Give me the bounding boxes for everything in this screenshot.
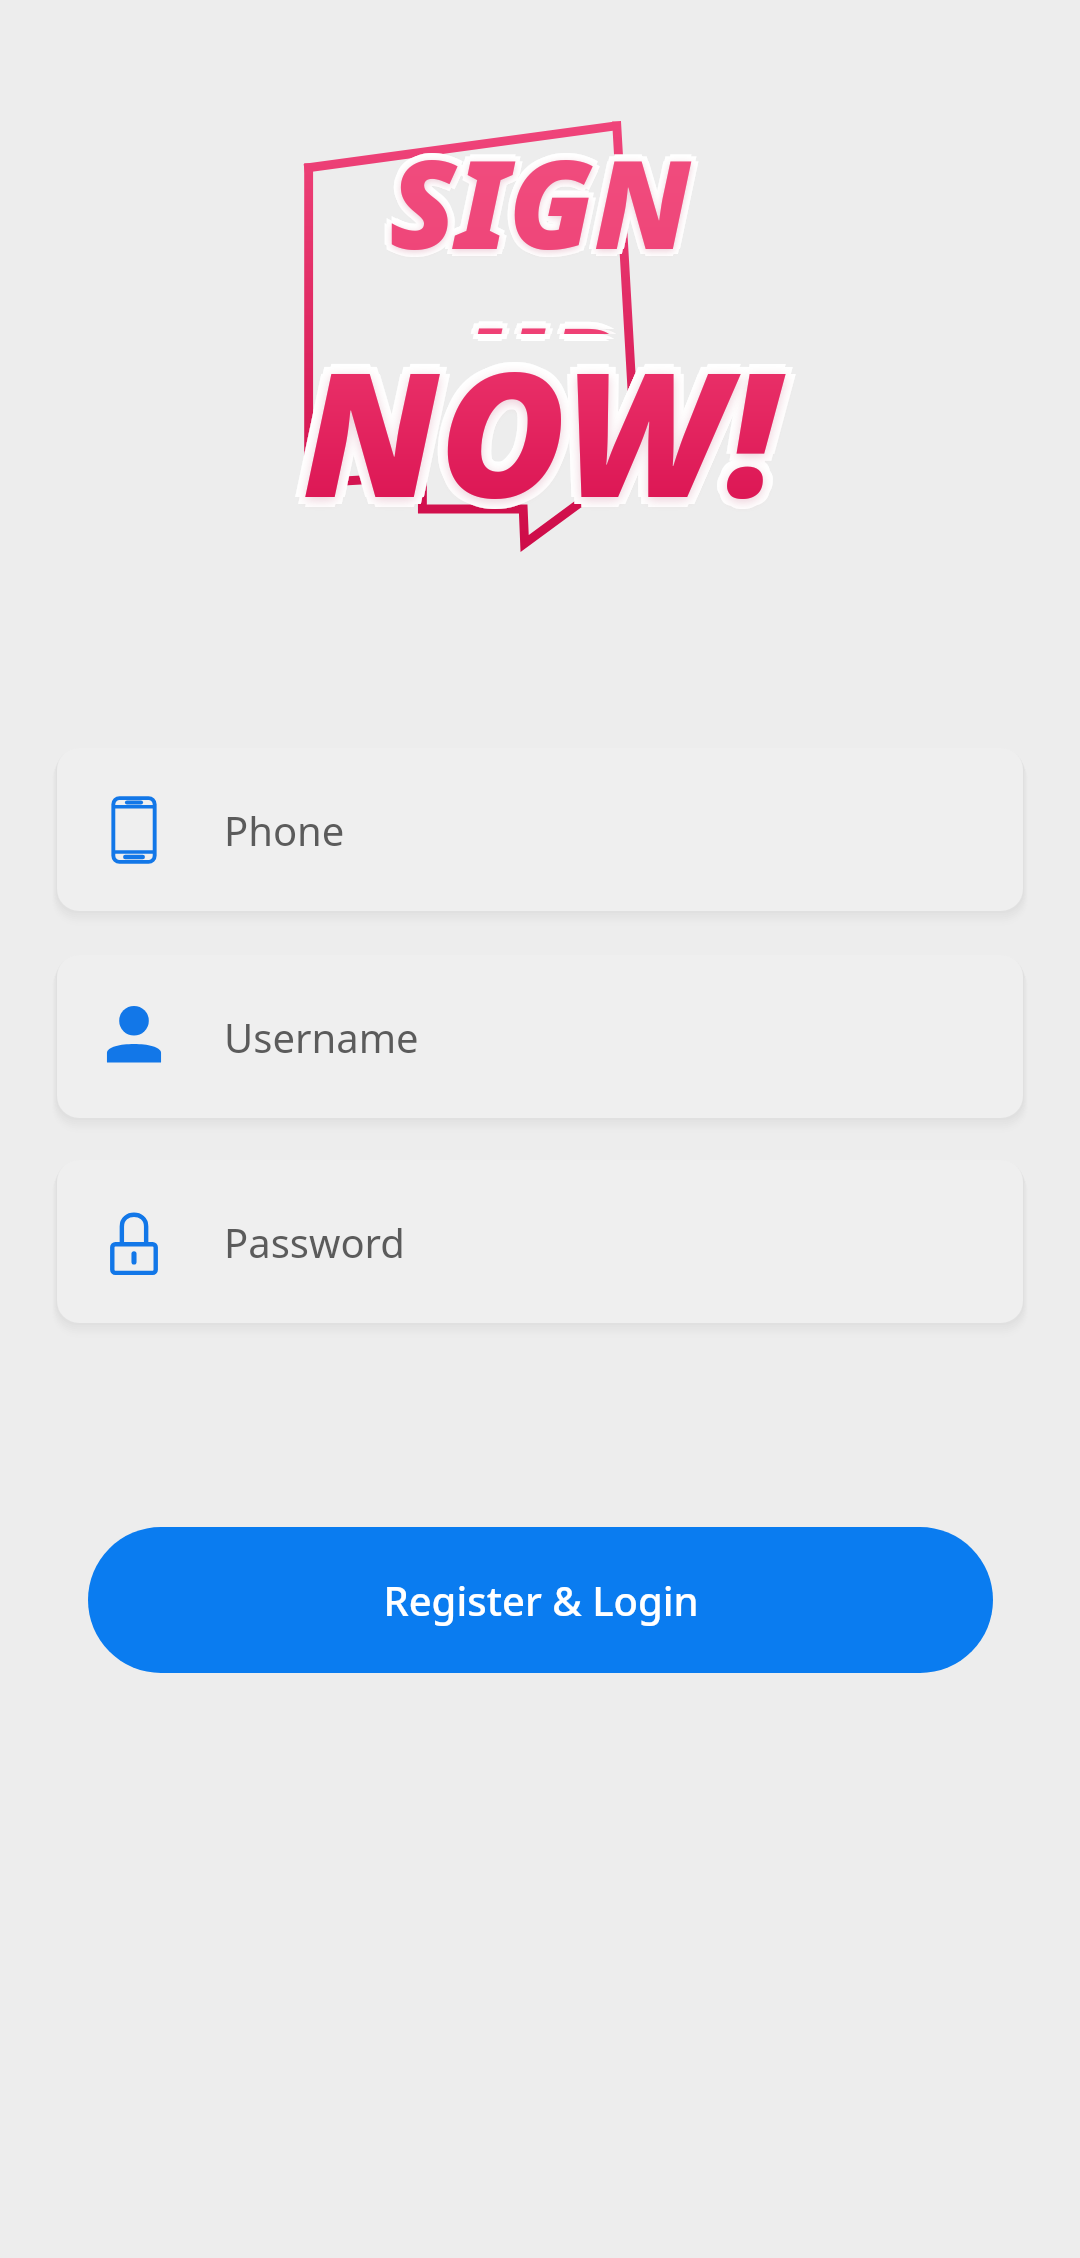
staticText: SIGN UP [305,123,785,339]
staticText: Password [224,1215,405,1269]
staticText: NOW! [309,319,786,554]
staticText: Register & Login [383,1573,699,1627]
staticText: NOW! [302,322,779,557]
staticText: NOW! [302,312,779,547]
button[interactable]: Password [57,1160,1023,1323]
staticText: SIGN UP [300,118,780,334]
staticText: Phone [224,803,345,857]
button[interactable]: Username [57,955,1023,1118]
other: Password [108,1206,160,1278]
staticText: SIGN UP [305,113,785,329]
staticText: NOW! [292,312,769,547]
staticText: SIGN UP [293,118,773,334]
staticText: SIGN UP [307,118,787,334]
staticText: NOW! [302,302,779,537]
staticText: Username [224,1010,419,1064]
staticText: NOW! [295,305,772,540]
staticText: NOW! [309,305,786,540]
staticText: SIGN UP [300,125,780,341]
other: Phone [108,794,160,866]
button[interactable]: Register & Login [88,1527,993,1673]
staticText: SIGN UP [300,111,780,327]
staticText: NOW! [312,312,789,547]
other: Username [108,1001,160,1073]
staticText: SIGN UP [295,123,775,339]
staticText: NOW! [295,319,772,554]
staticText: SIGN UP [295,113,775,329]
button[interactable]: Phone [57,748,1023,911]
